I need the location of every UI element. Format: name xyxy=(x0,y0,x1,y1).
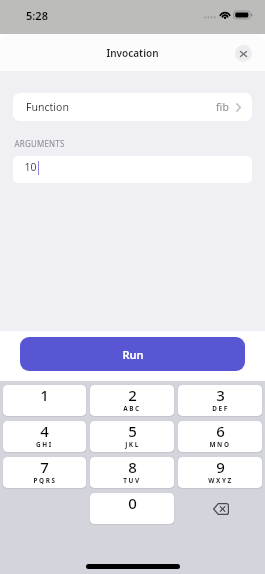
button[interactable]: Close xyxy=(235,45,252,62)
staticText: GHI xyxy=(36,440,53,449)
button[interactable]: 3 xyxy=(178,385,262,416)
staticText: PQRS xyxy=(33,476,57,485)
staticText: Run xyxy=(122,347,144,362)
staticText: JKL xyxy=(125,440,140,449)
button[interactable]: 2 xyxy=(90,385,174,416)
staticText: MNO xyxy=(209,440,231,449)
button[interactable]: Function xyxy=(13,93,252,121)
button[interactable]: 10 xyxy=(13,156,252,183)
staticText: 0 xyxy=(128,493,137,513)
button[interactable]: 1 xyxy=(3,385,86,416)
staticText: 7 xyxy=(40,457,49,477)
button[interactable]: 5 xyxy=(90,421,174,452)
staticText: 4 xyxy=(40,421,49,441)
staticText: 6 xyxy=(216,421,225,441)
staticText: TUV xyxy=(123,476,141,485)
staticText: 2 xyxy=(128,385,137,405)
button[interactable]: 6 xyxy=(178,421,262,452)
staticText: WXYZ xyxy=(208,476,233,485)
staticText: 10 xyxy=(24,160,37,174)
button[interactable]: Run xyxy=(20,337,245,371)
staticText: 5 xyxy=(128,421,137,441)
staticText: ABC xyxy=(123,404,141,413)
staticText: Invocation xyxy=(106,46,159,60)
staticText: 3 xyxy=(216,385,225,405)
staticText: ARGUMENTS xyxy=(14,138,65,149)
button[interactable]: 8 xyxy=(90,457,174,488)
button[interactable]: 7 xyxy=(3,457,86,488)
staticText: 8 xyxy=(128,457,137,477)
button[interactable]: Backspace xyxy=(178,493,262,524)
button[interactable]: 9 xyxy=(178,457,262,488)
button[interactable]: 4 xyxy=(3,421,86,452)
staticText: 5:28 xyxy=(26,8,48,23)
staticText: Function xyxy=(26,100,69,114)
staticText: DEF xyxy=(212,404,229,413)
staticText: 9 xyxy=(216,457,225,477)
staticText: fib xyxy=(216,100,229,114)
button[interactable]: 0 xyxy=(90,493,174,524)
staticText: 1 xyxy=(40,385,49,405)
